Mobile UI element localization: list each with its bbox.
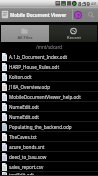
button[interactable]: MobileDocumentViewer_help.odt (0, 92, 98, 102)
button[interactable]: Search (87, 11, 95, 19)
staticText: deed_to_bau.sow (9, 154, 47, 160)
button[interactable]: Kolton.odt (0, 72, 98, 82)
staticText: NumeEdit.odt (9, 114, 39, 120)
staticText: Kolton.odt (9, 74, 32, 80)
button[interactable]: textEdit.odt (0, 172, 98, 176)
staticText: Populating_the_backend.odp (9, 124, 72, 130)
staticText: AM (91, 1, 97, 6)
button[interactable]: J18A_Overview.odp (0, 82, 98, 92)
staticText: textEdit.odt (9, 172, 34, 175)
button[interactable]: All Files (0, 25, 49, 42)
staticText: 8:59 (78, 0, 90, 7)
button[interactable]: TheCaves.txt (0, 132, 98, 142)
staticText: TheCaves.txt (9, 134, 37, 140)
staticText: azure_bonds.snt (9, 144, 45, 150)
staticText: MobileDocumentViewer_help.odt (9, 94, 81, 100)
staticText: Recent (67, 35, 81, 40)
button[interactable]: NumeEdit.odt (0, 112, 98, 122)
button[interactable]: deed_to_bau.sow (0, 152, 98, 162)
staticText: /mnt/sdcard (36, 44, 63, 50)
staticText: A.1.b_Document_Index.odt (9, 54, 68, 60)
button[interactable]: sales_report.csv (0, 162, 98, 172)
button[interactable]: HARP_House_Rules.odt (0, 62, 98, 72)
button[interactable]: NumeEdit.odt (0, 102, 98, 112)
staticText: Mobile Document Viewer (10, 12, 67, 18)
button[interactable]: Recent (49, 25, 98, 42)
button[interactable]: A.1.b_Document_Index.odt (0, 52, 98, 62)
staticText: NumeEdit.odt (9, 104, 39, 110)
button[interactable]: azure_bonds.snt (0, 142, 98, 152)
staticText: J18A_Overview.odp (9, 84, 50, 90)
button[interactable]: Help (74, 11, 82, 19)
staticText: sales_report.csv (9, 164, 44, 170)
staticText: ? (77, 12, 80, 19)
button[interactable]: Populating_the_backend.odp (0, 122, 98, 132)
staticText: HARP_House_Rules.odt (9, 64, 60, 70)
staticText: All Files (17, 35, 33, 40)
